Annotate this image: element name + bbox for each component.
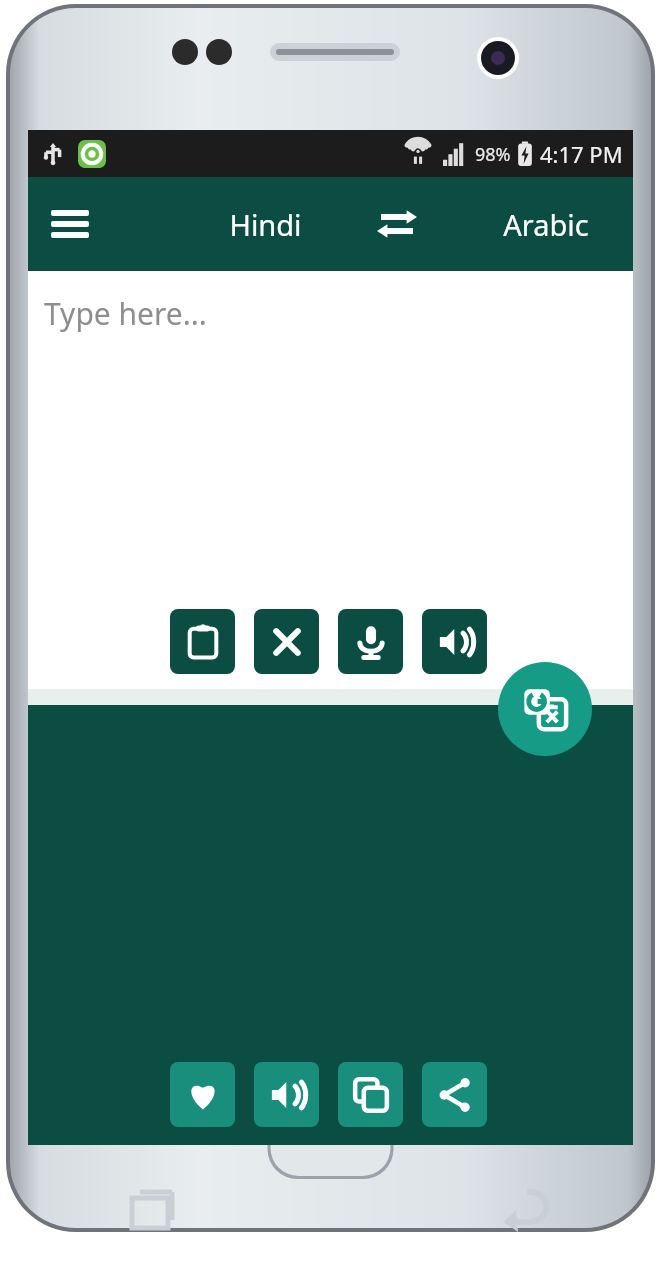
button[interactable]: Listen xyxy=(254,1062,319,1127)
staticText: Arabic xyxy=(503,205,589,244)
staticText: Hindi xyxy=(229,205,302,244)
button[interactable]: Copy xyxy=(338,1062,403,1127)
button[interactable]: Arabic xyxy=(458,177,633,271)
button[interactable]: Paste xyxy=(170,609,235,674)
button[interactable]: Menu xyxy=(40,194,100,254)
button[interactable]: Speak xyxy=(338,609,403,674)
button[interactable]: Hindi xyxy=(178,177,353,271)
button[interactable]: Favorite xyxy=(170,1062,235,1127)
button[interactable]: Share xyxy=(422,1062,487,1127)
staticText: 98% xyxy=(475,142,511,167)
button[interactable]: Listen xyxy=(422,609,487,674)
staticText: Type here... xyxy=(44,293,207,334)
staticText: 4:17 PM xyxy=(540,139,623,169)
button[interactable]: Clear xyxy=(254,609,319,674)
button[interactable]: Translate xyxy=(498,662,592,756)
button[interactable]: Swap languages xyxy=(363,190,431,258)
